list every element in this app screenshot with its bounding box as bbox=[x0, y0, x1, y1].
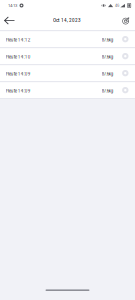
button[interactable]: Heute 14:09 bbox=[0, 65, 135, 82]
staticText: Heute 14:12 bbox=[6, 37, 31, 43]
staticText: 14:13 bbox=[8, 3, 17, 8]
button[interactable]: Back bbox=[0, 11, 16, 30]
staticText: 87.6kg bbox=[102, 54, 113, 60]
staticText: 87.6kg bbox=[102, 37, 113, 43]
staticText: 4G bbox=[115, 3, 119, 8]
staticText: Oct 14, 2023 bbox=[53, 18, 81, 23]
button[interactable]: Heute 14:09 bbox=[0, 82, 135, 99]
button[interactable]: Set goal bbox=[117, 11, 135, 30]
staticText: Heute 14:09 bbox=[6, 88, 31, 94]
staticText: Heute 14:09 bbox=[6, 71, 31, 77]
button[interactable]: Heute 14:12 bbox=[0, 31, 135, 48]
button[interactable]: Heute 14:10 bbox=[0, 48, 135, 65]
staticText: Heute 14:10 bbox=[6, 54, 31, 60]
staticText: 87.6kg bbox=[102, 71, 113, 77]
staticText: 87.6kg bbox=[102, 88, 113, 94]
